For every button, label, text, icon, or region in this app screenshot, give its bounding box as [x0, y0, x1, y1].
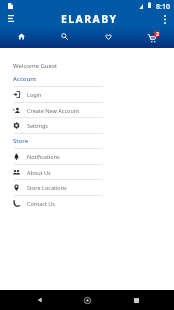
button[interactable]: Open navigation drawer [2, 11, 19, 27]
button[interactable]: Settings [0, 117, 174, 133]
button[interactable]: Store Locations [0, 179, 174, 195]
staticText: Notifications [27, 153, 60, 160]
staticText: Store [13, 137, 29, 145]
button[interactable]: Wishlist [86, 27, 130, 48]
button[interactable]: More options [158, 11, 174, 27]
button[interactable]: Back [29, 290, 49, 310]
staticText: Login [27, 91, 42, 98]
button[interactable]: Create New Account [0, 102, 174, 118]
button[interactable]: Contact Us [0, 195, 174, 211]
staticText: Account [13, 75, 37, 83]
staticText: Welcome Guest [13, 62, 57, 70]
staticText: ELARABY [61, 12, 118, 26]
button[interactable]: Search [43, 27, 86, 48]
staticText: Create New Account [27, 107, 80, 114]
button[interactable]: About Us [0, 164, 174, 180]
staticText: Contact Us [27, 200, 55, 207]
staticText: About Us [27, 169, 51, 176]
button[interactable]: Login [0, 86, 174, 102]
staticText: 8:10 [156, 2, 170, 12]
button[interactable]: Home [0, 27, 43, 48]
button[interactable]: Notifications [0, 148, 174, 164]
staticText: 2 [156, 31, 159, 37]
button[interactable]: Home [77, 290, 97, 310]
button[interactable]: Shopping cart [130, 27, 174, 48]
button[interactable]: Recent apps [126, 290, 146, 310]
staticText: Settings [27, 122, 48, 129]
staticText: Store Locations [27, 184, 67, 191]
